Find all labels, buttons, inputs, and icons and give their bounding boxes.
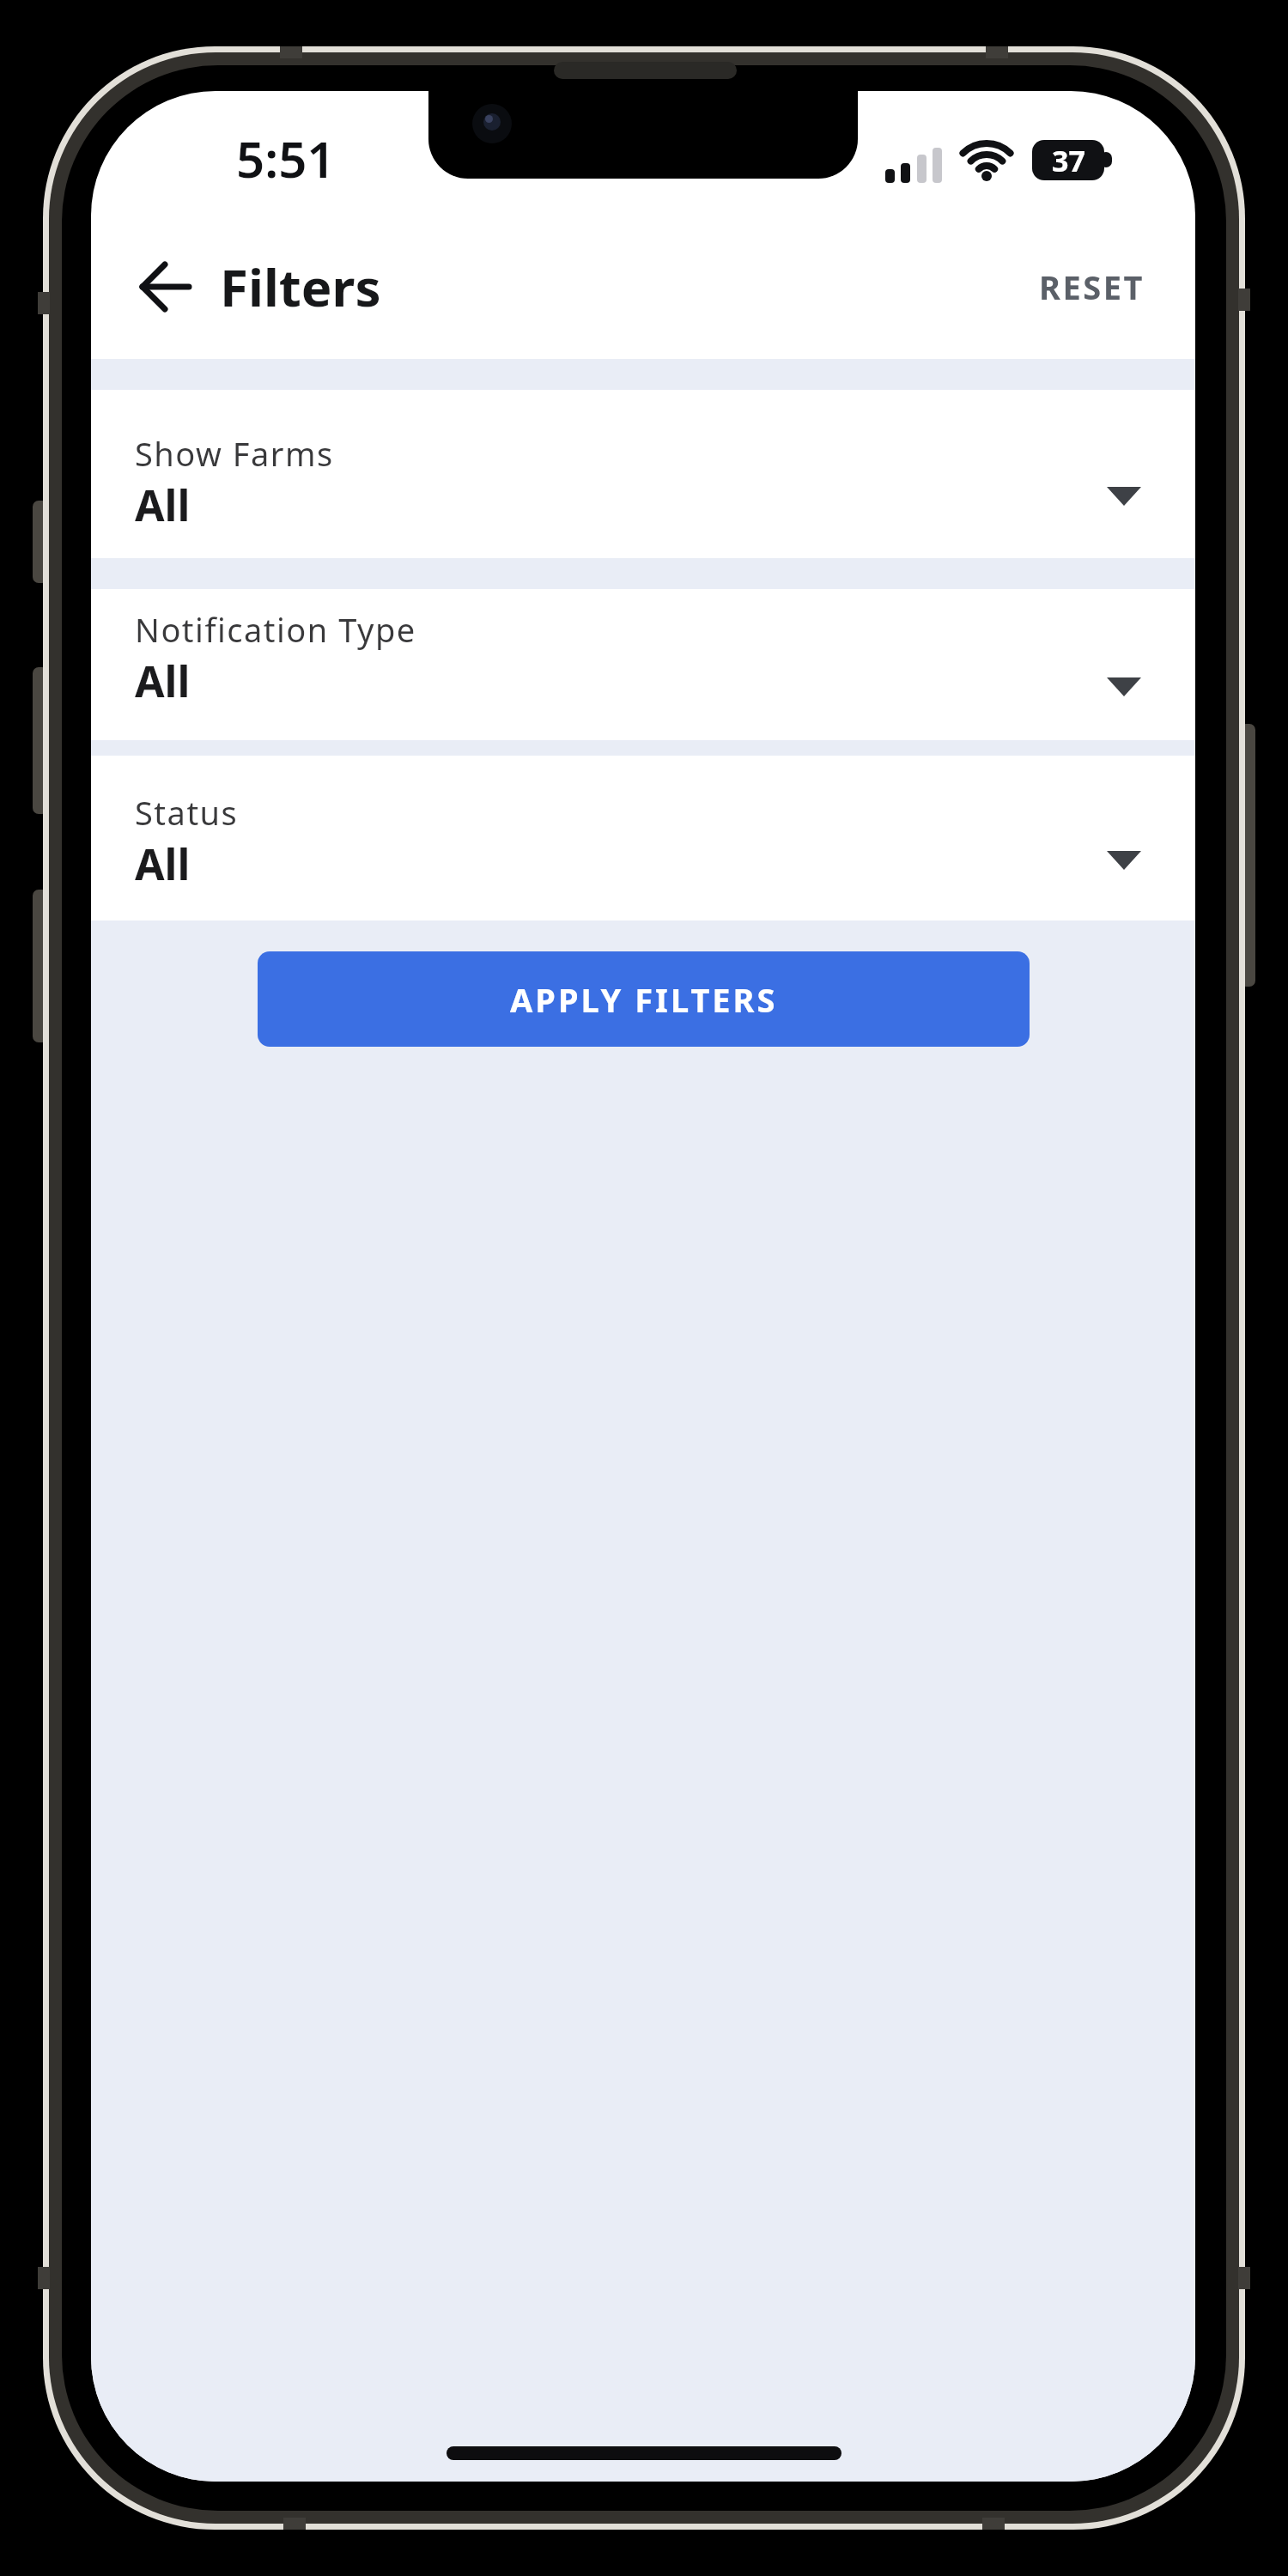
button[interactable]: Status xyxy=(91,756,1195,920)
staticText: Filters xyxy=(220,252,381,322)
button[interactable]: Show Farms xyxy=(91,390,1195,558)
staticText: APPLY FILTERS xyxy=(510,977,778,1022)
staticText: RESET xyxy=(1039,264,1145,309)
staticText: Status xyxy=(135,790,239,835)
button[interactable]: APPLY FILTERS xyxy=(258,951,1030,1047)
staticText: All xyxy=(135,652,191,710)
staticText: All xyxy=(135,835,191,893)
button[interactable]: Notification Type xyxy=(91,589,1195,740)
staticText: 5:51 xyxy=(236,125,336,192)
staticText: Notification Type xyxy=(135,607,416,652)
button[interactable]: RESET xyxy=(1027,259,1156,314)
staticText: All xyxy=(135,476,191,534)
button[interactable] xyxy=(132,256,197,318)
staticText: 37 xyxy=(1052,141,1085,180)
staticText: Show Farms xyxy=(135,431,334,476)
